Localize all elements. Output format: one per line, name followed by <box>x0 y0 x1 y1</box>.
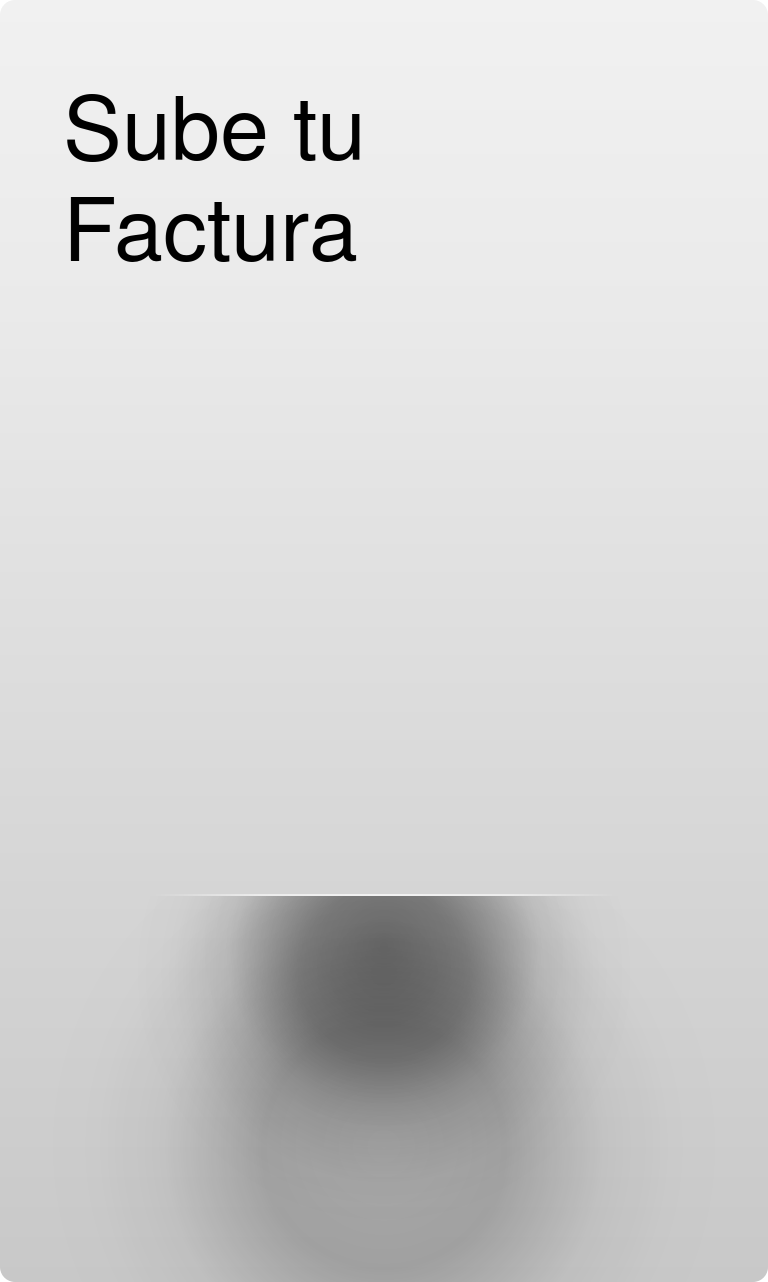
staticText: Factura <box>63 160 358 286</box>
staticText: Sube tu <box>63 59 366 185</box>
